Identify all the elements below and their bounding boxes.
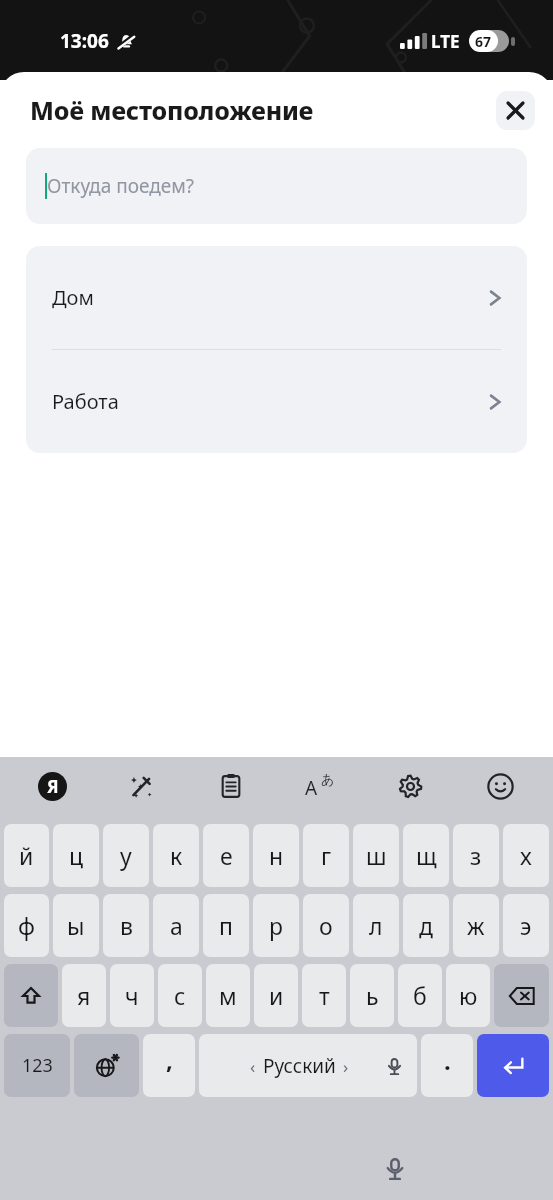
staticText: б (413, 980, 427, 1011)
button[interactable]: Переписать (97, 757, 186, 815)
staticText: Моё местоположение (30, 93, 314, 127)
staticText: п (219, 910, 233, 941)
staticText: ю (459, 980, 478, 1011)
staticText: н (269, 840, 284, 871)
staticText: Работа (52, 388, 119, 415)
button[interactable]: в (103, 894, 149, 957)
staticText: д (419, 910, 433, 941)
button[interactable]: ю (446, 964, 490, 1027)
staticText: с (174, 980, 186, 1011)
button[interactable]: п (203, 894, 249, 957)
staticText: 123 (22, 1053, 53, 1078)
button[interactable]: Сменить язык (74, 1034, 139, 1097)
staticText: ф (18, 910, 35, 941)
button[interactable]: н (253, 824, 299, 887)
staticText: ы (67, 910, 85, 941)
button[interactable]: а (153, 894, 199, 957)
staticText: ч (125, 980, 139, 1011)
button[interactable]: Буфер обмена (186, 757, 275, 815)
staticText: 67 (475, 32, 492, 51)
staticText: к (170, 840, 183, 871)
staticText: ж (467, 910, 485, 941)
button[interactable]: . (421, 1034, 473, 1097)
button[interactable]: ь (350, 964, 394, 1027)
staticText: а (170, 910, 183, 941)
button[interactable]: э (503, 894, 549, 957)
button[interactable]: Дом (26, 246, 527, 349)
staticText: р (269, 910, 283, 941)
staticText: у (120, 840, 132, 871)
staticText: л (369, 910, 383, 941)
staticText: › (343, 1055, 349, 1078)
button[interactable]: Shift (4, 964, 58, 1027)
button[interactable]: щ (403, 824, 449, 887)
button[interactable]: с (158, 964, 202, 1027)
button[interactable]: Яндекс (8, 757, 97, 815)
button[interactable]: т (302, 964, 346, 1027)
staticText: . (444, 1044, 451, 1077)
button[interactable]: ж (453, 894, 499, 957)
staticText: 13:06 (60, 28, 109, 54)
button[interactable]: Откуда поедем? (26, 148, 527, 224)
button[interactable]: , (143, 1034, 195, 1097)
staticText: あ (321, 771, 335, 787)
staticText: х (520, 840, 532, 871)
staticText: LTE (431, 30, 460, 53)
button[interactable]: Удалить (494, 964, 549, 1027)
button[interactable]: л (353, 894, 399, 957)
button[interactable]: б (398, 964, 442, 1027)
button[interactable]: Настройки (365, 757, 455, 815)
button[interactable]: Перевод (275, 757, 365, 815)
button[interactable]: Закрыть (496, 91, 535, 130)
button[interactable]: я (62, 964, 106, 1027)
button[interactable]: д (403, 894, 449, 957)
button[interactable]: Работа (26, 350, 527, 453)
button[interactable]: р (253, 894, 299, 957)
staticText: ц (69, 840, 84, 871)
staticText: ь (366, 980, 379, 1011)
button[interactable]: 123 (4, 1034, 70, 1097)
staticText: з (470, 840, 482, 871)
button[interactable]: к (153, 824, 199, 887)
staticText: Я (47, 775, 59, 798)
staticText: е (220, 840, 233, 871)
staticText: э (520, 910, 532, 941)
button[interactable]: Голосовой ввод (375, 1149, 415, 1189)
button[interactable]: у (103, 824, 149, 887)
button[interactable]: х (503, 824, 549, 887)
button[interactable]: ф (4, 894, 49, 957)
staticText: ‹ (250, 1055, 256, 1078)
staticText: г (321, 840, 332, 871)
staticText: в (120, 910, 133, 941)
button[interactable]: о (303, 894, 349, 957)
button[interactable]: г (303, 824, 349, 887)
staticText: м (219, 980, 237, 1011)
button[interactable]: ы (53, 894, 99, 957)
button[interactable]: е (203, 824, 249, 887)
button[interactable]: й (4, 824, 49, 887)
staticText: я (77, 980, 91, 1011)
staticText: о (319, 910, 333, 941)
staticText: , (166, 1043, 173, 1076)
staticText: и (269, 980, 284, 1011)
button[interactable]: ц (53, 824, 99, 887)
staticText: Русский (263, 1053, 336, 1079)
button[interactable]: м (206, 964, 250, 1027)
button[interactable]: Эмодзи (455, 757, 545, 815)
button[interactable]: ч (110, 964, 154, 1027)
button[interactable]: ш (353, 824, 399, 887)
staticText: A (305, 775, 318, 801)
staticText: щ (416, 840, 437, 871)
staticText: т (319, 980, 330, 1011)
button[interactable]: з (453, 824, 499, 887)
staticText: Дом (52, 284, 94, 311)
button[interactable]: и (254, 964, 298, 1027)
staticText: й (19, 840, 34, 871)
staticText: Откуда поедем? (47, 173, 195, 199)
button[interactable]: Ввод (477, 1034, 549, 1097)
staticText: ш (366, 840, 387, 871)
button[interactable]: ‹ (199, 1034, 417, 1097)
